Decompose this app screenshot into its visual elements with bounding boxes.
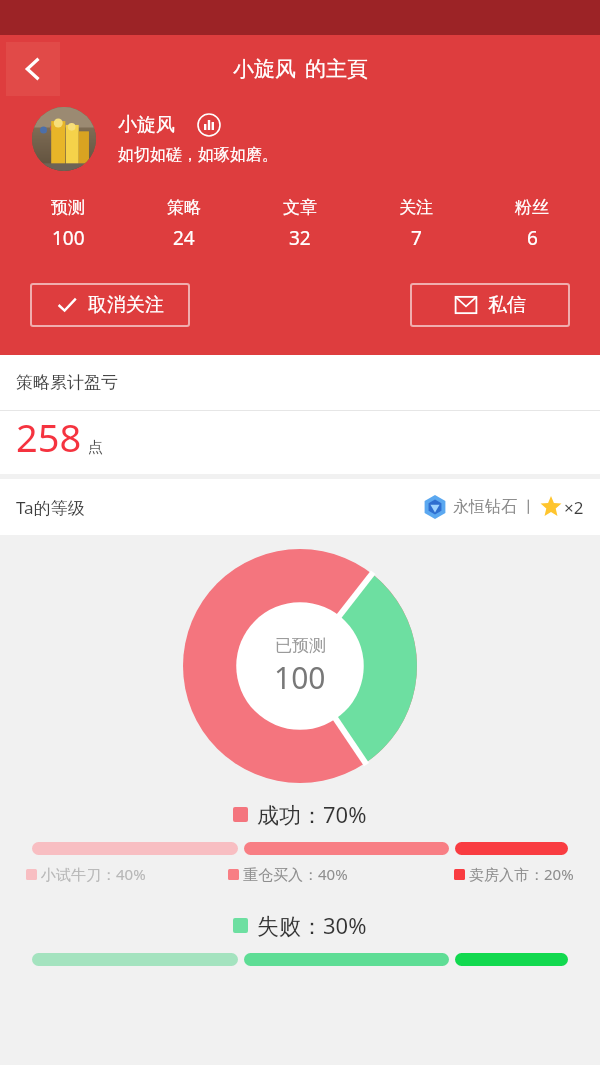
button[interactable]: Back xyxy=(6,42,60,96)
staticText: 永恒钻石 xyxy=(453,497,517,517)
staticText: 100 xyxy=(52,225,85,251)
button[interactable]: 粉丝 xyxy=(474,197,590,251)
button[interactable]: 策略累计盈亏 xyxy=(0,355,600,410)
staticText: 取消关注 xyxy=(88,293,164,317)
staticText: 24 xyxy=(173,225,195,251)
staticText: 卖房入市：20% xyxy=(469,864,574,884)
staticText: Ta的等级 xyxy=(16,496,85,519)
staticText: 策略累计盈亏 xyxy=(16,372,118,393)
button[interactable]: Statistics xyxy=(197,113,221,137)
button[interactable]: 文章 xyxy=(242,197,358,251)
button[interactable]: Avatar xyxy=(32,107,96,171)
staticText: 粉丝 xyxy=(515,197,549,218)
staticText: 的主頁 xyxy=(305,56,368,82)
staticText: 7 xyxy=(411,225,422,251)
staticText: 小旋风 xyxy=(233,56,296,82)
staticText: 小试牛刀：40% xyxy=(41,864,146,884)
staticText: 成功：70% xyxy=(257,799,367,829)
staticText: 重仓买入：40% xyxy=(243,864,348,884)
staticText: 策略 xyxy=(167,197,201,218)
staticText: 关注 xyxy=(399,197,433,218)
staticText: ×2 xyxy=(564,496,584,519)
button[interactable]: 预测 xyxy=(10,197,126,251)
staticText: 小旋风 xyxy=(118,113,175,137)
staticText: 100 xyxy=(274,657,326,698)
staticText: 已预测 xyxy=(275,635,326,656)
button[interactable]: 策略 xyxy=(126,197,242,251)
staticText: 私信 xyxy=(488,293,526,317)
staticText: 如切如磋，如琢如磨。 xyxy=(118,145,278,165)
staticText: 预测 xyxy=(51,197,85,218)
staticText: 258 xyxy=(16,411,82,462)
staticText: 点 xyxy=(88,438,103,457)
button[interactable]: 关注 xyxy=(358,197,474,251)
staticText: 文章 xyxy=(283,197,317,218)
button[interactable]: 取消关注 xyxy=(30,283,190,327)
staticText: 丨 xyxy=(521,498,536,517)
staticText: 6 xyxy=(527,225,538,251)
button[interactable]: 私信 xyxy=(410,283,570,327)
button[interactable]: Ta的等级 xyxy=(16,479,584,535)
staticText: 32 xyxy=(289,225,311,251)
staticText: 失败：30% xyxy=(257,910,367,940)
